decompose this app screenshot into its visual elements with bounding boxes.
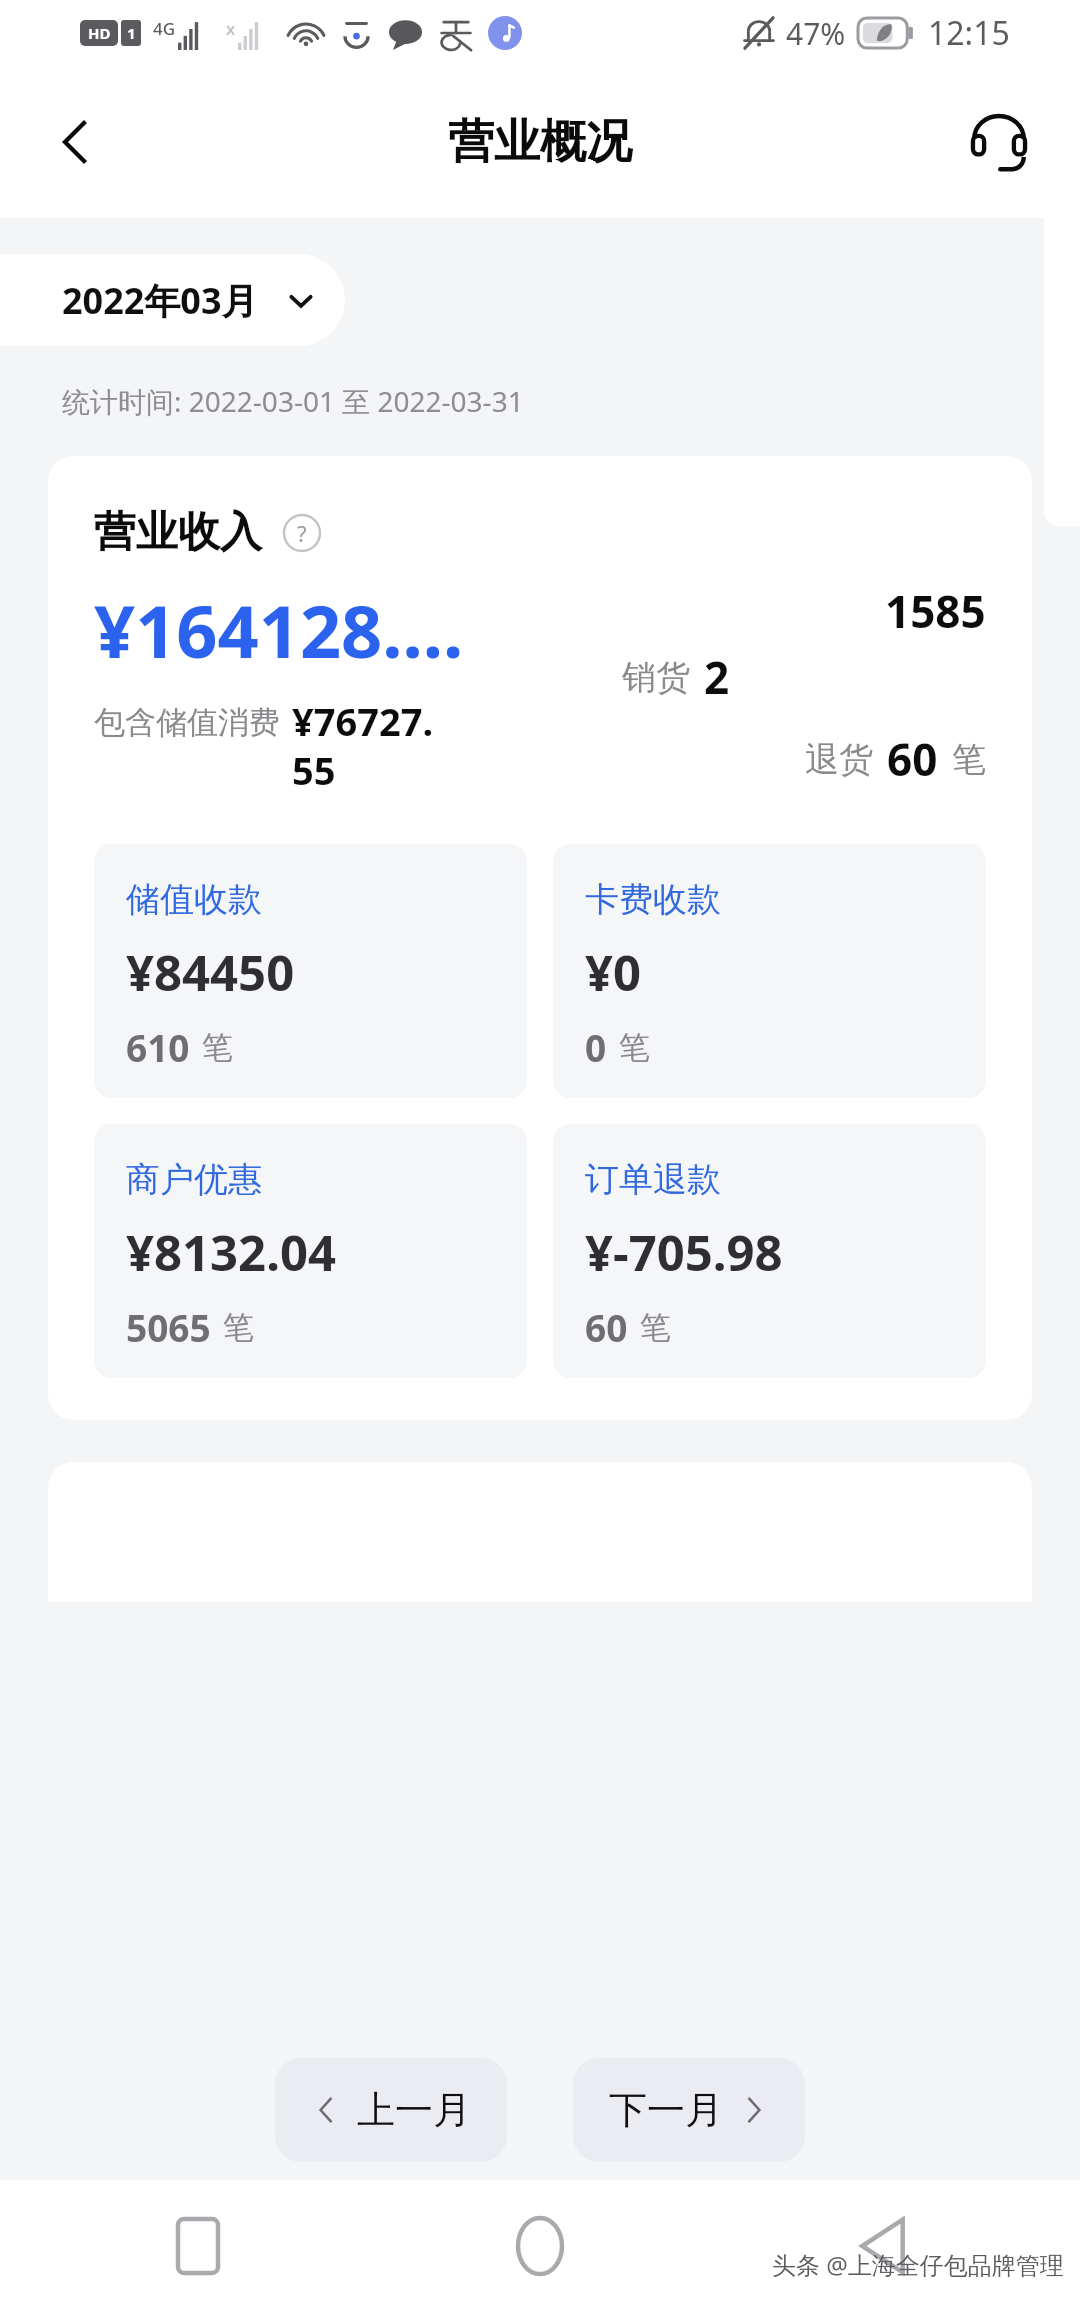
staticText: ? bbox=[297, 518, 307, 548]
staticText: 销货 bbox=[622, 656, 690, 699]
staticText: 1 bbox=[127, 23, 136, 43]
staticText: 储值收款 bbox=[126, 878, 262, 921]
staticText: 订单退款 bbox=[585, 1158, 721, 1201]
staticText: 60 bbox=[887, 729, 938, 789]
staticText: 上一月 bbox=[357, 2086, 471, 2134]
staticText: 退货 bbox=[805, 738, 873, 781]
staticText: 笔 bbox=[619, 1028, 650, 1067]
staticText: ¥76727. 55 bbox=[292, 695, 434, 796]
staticText: 笔 bbox=[952, 738, 986, 781]
button[interactable]: 订单退款 bbox=[553, 1124, 986, 1378]
button[interactable]: 上一月 bbox=[275, 2058, 507, 2162]
button[interactable]: 2022年03月 bbox=[0, 254, 345, 346]
staticText: 610 bbox=[126, 1022, 190, 1072]
button[interactable]: 下一月 bbox=[573, 2058, 805, 2162]
staticText: 包含储值消费 bbox=[94, 703, 280, 742]
staticText: 47% bbox=[786, 13, 846, 54]
staticText: 头条 @上海全仔包品牌管理 bbox=[772, 2248, 1064, 2281]
staticText: 营业收入 bbox=[94, 506, 262, 559]
button[interactable]: Home bbox=[492, 2198, 588, 2294]
staticText: 卡费收款 bbox=[585, 878, 721, 921]
staticText: ¥8132.04 bbox=[126, 1219, 336, 1286]
staticText: 笔 bbox=[202, 1028, 233, 1067]
staticText: ¥-705.98 bbox=[585, 1219, 783, 1286]
staticText: ¥0 bbox=[585, 939, 642, 1006]
button[interactable]: 卡费收款 bbox=[553, 844, 986, 1098]
button[interactable]: Help bbox=[282, 513, 322, 553]
staticText: 2 bbox=[704, 647, 730, 707]
staticText: 4G bbox=[153, 17, 176, 40]
button[interactable]: 营业收入 bbox=[48, 456, 1032, 1420]
staticText: ¥164128.... bbox=[94, 581, 464, 679]
staticText: 统计时间: 2022-03-01 至 2022-03-31 bbox=[62, 382, 524, 420]
staticText: 2022年03月 bbox=[62, 276, 258, 325]
staticText: 12:15 bbox=[928, 11, 1010, 55]
button[interactable]: 储值收款 bbox=[94, 844, 527, 1098]
button[interactable]: Back bbox=[834, 2198, 930, 2294]
staticText: 5065 bbox=[126, 1302, 211, 1352]
staticText: 笔 bbox=[640, 1308, 671, 1347]
button[interactable]: Back bbox=[20, 87, 130, 197]
staticText: 0 bbox=[585, 1022, 607, 1072]
staticText: 营业概况 bbox=[448, 113, 632, 171]
staticText: 商户优惠 bbox=[126, 1158, 262, 1201]
staticText: HD bbox=[88, 23, 111, 43]
staticText: x bbox=[226, 17, 236, 40]
staticText: 下一月 bbox=[609, 2086, 723, 2134]
staticText: ¥84450 bbox=[126, 939, 295, 1006]
button[interactable]: Customer service bbox=[944, 87, 1054, 197]
staticText: 1585 bbox=[885, 581, 986, 641]
staticText: 笔 bbox=[223, 1308, 254, 1347]
button[interactable]: Recents bbox=[150, 2198, 246, 2294]
button[interactable]: 商户优惠 bbox=[94, 1124, 527, 1378]
staticText: 60 bbox=[585, 1302, 628, 1352]
